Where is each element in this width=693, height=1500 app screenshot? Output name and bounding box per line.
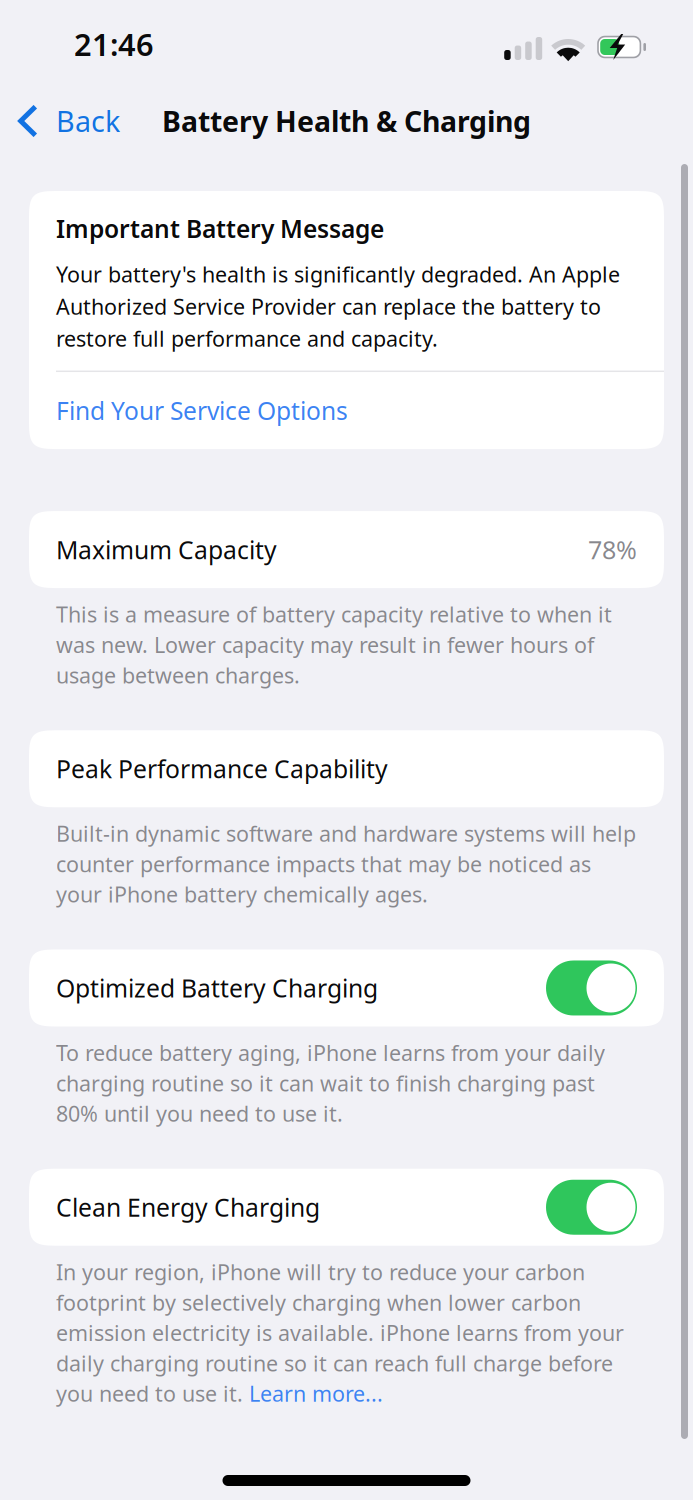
button[interactable]: Maximum Capacity xyxy=(29,511,664,588)
staticText: Back xyxy=(56,103,120,139)
staticText: Optimized Battery Charging xyxy=(56,972,378,1004)
button[interactable]: Back xyxy=(0,88,130,154)
staticText: Important Battery Message xyxy=(56,213,384,244)
staticText: In your region, iPhone will try to reduc… xyxy=(56,1257,624,1409)
staticText: Peak Performance Capability xyxy=(56,753,388,784)
staticText: Battery Health & Charging xyxy=(162,103,531,139)
staticText: Maximum Capacity xyxy=(56,534,277,565)
staticText: 78% xyxy=(588,534,637,565)
button[interactable]: Peak Performance Capability xyxy=(29,730,664,807)
button[interactable]: Optimized Battery Charging xyxy=(29,949,664,1026)
staticText: Built-in dynamic software and hardware s… xyxy=(56,818,636,909)
staticText: To reduce battery aging, iPhone learns f… xyxy=(56,1037,605,1129)
button[interactable]: Clean Energy Charging xyxy=(29,1169,664,1246)
staticText: Find Your Service Options xyxy=(56,395,348,426)
staticText: Your battery's health is significantly d… xyxy=(56,258,620,355)
staticText: 21:46 xyxy=(74,25,154,63)
staticText: This is a measure of battery capacity re… xyxy=(56,599,612,690)
button[interactable]: Find Your Service Options xyxy=(29,372,664,449)
staticText: Clean Energy Charging xyxy=(56,1192,320,1223)
